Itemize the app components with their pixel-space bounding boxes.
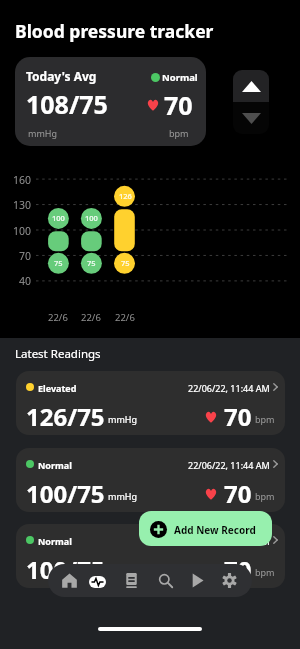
staticText: bpm — [255, 413, 275, 425]
staticText: mmHg — [108, 490, 138, 502]
staticText: 22/06/22, 11:44 AM — [188, 535, 270, 547]
staticText: 75 — [87, 258, 96, 268]
button[interactable]: Add New Record — [139, 511, 272, 546]
staticText: bpm — [255, 490, 275, 502]
staticText: bpm — [255, 566, 275, 578]
button[interactable]: Normal — [16, 524, 285, 588]
staticText: 100 — [85, 213, 98, 223]
staticText: Today's Avg — [26, 68, 97, 84]
button[interactable]: Decrease — [233, 102, 269, 134]
staticText: 108/75 — [26, 87, 108, 121]
staticText: 22/6 — [48, 311, 68, 324]
button[interactable]: Home — [57, 568, 81, 593]
staticText: 126/75 — [26, 400, 105, 433]
staticText: Latest Readings — [15, 346, 101, 362]
staticText: 130 — [13, 198, 32, 212]
staticText: 100 — [52, 213, 65, 223]
staticText: 100 — [13, 224, 32, 238]
staticText: 100/75 — [26, 553, 105, 586]
staticText: 75 — [54, 258, 63, 268]
button[interactable]: Play — [185, 568, 209, 593]
staticText: 40 — [19, 274, 32, 288]
staticText: 70 — [224, 553, 252, 586]
staticText: 75 — [121, 258, 130, 268]
staticText: Normal — [162, 71, 198, 84]
staticText: 70 — [19, 249, 32, 263]
staticText: 126 — [119, 191, 132, 201]
staticText: 22/6 — [115, 311, 135, 324]
staticText: Elevated — [38, 382, 77, 394]
button[interactable]: Increase — [233, 70, 269, 102]
button[interactable]: Today's Avg — [15, 57, 206, 146]
button[interactable]: Search — [153, 568, 177, 593]
staticText: Normal — [38, 459, 72, 471]
staticText: Normal — [38, 535, 72, 547]
staticText: 70 — [164, 88, 193, 122]
staticText: bpm — [169, 127, 189, 139]
staticText: 160 — [13, 173, 32, 187]
staticText: 22/6 — [81, 311, 101, 324]
staticText: mmHg — [28, 127, 58, 139]
staticText: Add New Record — [174, 523, 256, 537]
staticText: 70 — [224, 400, 252, 433]
button[interactable]: Activity — [89, 576, 106, 588]
button[interactable]: Records — [119, 568, 143, 593]
button[interactable]: Elevated — [16, 371, 285, 435]
button[interactable]: Normal — [16, 448, 285, 512]
staticText: Blood pressure tracker — [15, 19, 214, 43]
staticText: 100/75 — [26, 477, 105, 510]
button[interactable]: Settings — [217, 568, 241, 593]
staticText: mmHg — [108, 413, 138, 425]
staticText: 22/06/22, 11:44 AM — [188, 382, 270, 394]
staticText: mmHg — [108, 566, 138, 578]
staticText: 70 — [224, 477, 252, 510]
staticText: 22/06/22, 11:44 AM — [188, 459, 270, 471]
